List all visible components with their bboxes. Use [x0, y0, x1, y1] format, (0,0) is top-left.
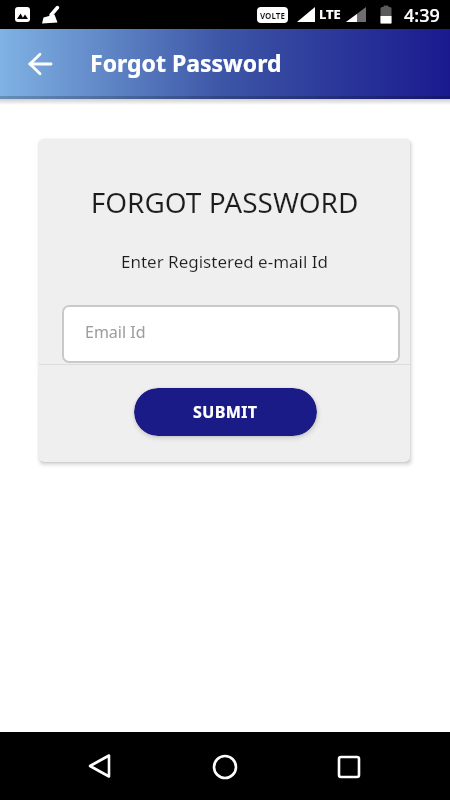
staticText: Email Id — [85, 321, 146, 343]
staticText: Enter Registered e-mail Id — [39, 250, 410, 273]
staticText: 4:39 — [404, 3, 440, 28]
button[interactable]: Email Id — [62, 305, 400, 363]
staticText: FORGOT PASSWORD — [39, 183, 410, 221]
button[interactable] — [327, 745, 371, 789]
staticText: Forgot Password — [90, 47, 282, 78]
button[interactable] — [203, 745, 247, 789]
staticText: LTE — [319, 5, 341, 23]
staticText: SUBMIT — [193, 401, 258, 423]
button[interactable]: SUBMIT — [134, 388, 317, 436]
staticText: VOLTE — [260, 10, 285, 21]
button[interactable] — [78, 745, 122, 789]
button[interactable] — [18, 42, 62, 86]
